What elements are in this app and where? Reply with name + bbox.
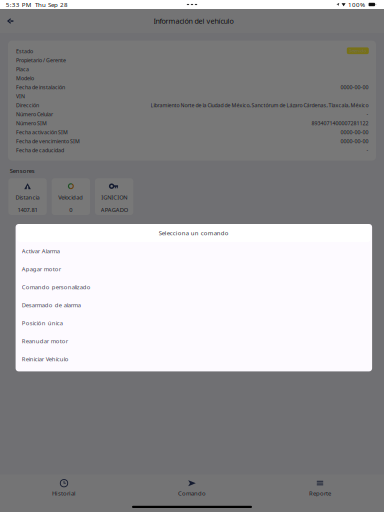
staticText: Reiniciar Vehículo bbox=[22, 355, 69, 363]
staticText: Fecha de caducidad bbox=[16, 146, 64, 154]
staticText: Reanudar motor bbox=[22, 337, 68, 345]
button[interactable]: Activar Alarma bbox=[16, 242, 372, 260]
button[interactable]: Reiniciar Vehículo bbox=[16, 350, 372, 368]
staticText: Detenido bbox=[349, 48, 367, 53]
staticText: Velocidad bbox=[58, 193, 83, 201]
staticText: Apagar motor bbox=[22, 265, 61, 273]
staticText: Dirección bbox=[16, 101, 39, 109]
staticText: Comando bbox=[178, 489, 206, 497]
button[interactable]: Reporte bbox=[256, 475, 384, 501]
button[interactable]: Reanudar motor bbox=[16, 332, 372, 350]
staticText: Número Celular bbox=[16, 110, 53, 118]
staticText: 8934071400007281122 bbox=[311, 119, 368, 127]
staticText: 1407.81 bbox=[18, 206, 38, 214]
staticText: Propietario / Gerente bbox=[16, 56, 66, 64]
staticText: Sensores bbox=[10, 167, 35, 175]
staticText: 5:33 PM bbox=[6, 0, 32, 9]
button[interactable]: Comando personalizado bbox=[16, 278, 372, 296]
staticText: Comando personalizado bbox=[22, 283, 91, 291]
staticText: 100% bbox=[348, 0, 365, 9]
staticText: Fecha activación SIM bbox=[16, 128, 68, 136]
staticText: 0000-00-00 bbox=[340, 137, 368, 145]
staticText: Fecha de vencimiento SIM bbox=[16, 137, 80, 145]
staticText: IGNICION bbox=[101, 193, 127, 201]
button[interactable]: Back bbox=[3, 11, 18, 31]
staticText: Historial bbox=[52, 489, 76, 497]
button[interactable]: Desarmado de alarma bbox=[16, 296, 372, 314]
staticText: Posición única bbox=[22, 319, 63, 327]
button[interactable]: Apagar motor bbox=[16, 260, 372, 278]
staticText: Libramiento Norte de la Ciudad de México… bbox=[150, 101, 368, 109]
staticText: Fecha de instalación bbox=[16, 83, 65, 91]
staticText: 0 bbox=[69, 206, 72, 214]
staticText: APAGADO bbox=[101, 206, 128, 214]
staticText: 0000-00-00 bbox=[340, 83, 368, 91]
staticText: Modelo bbox=[16, 74, 34, 82]
staticText: Estado bbox=[16, 47, 33, 55]
staticText: Información del vehículo bbox=[153, 16, 233, 26]
staticText: Distancia bbox=[16, 193, 40, 201]
staticText: Desarmado de alarma bbox=[22, 301, 81, 309]
button[interactable]: Comando bbox=[128, 475, 256, 501]
button[interactable]: Posición única bbox=[16, 314, 372, 332]
staticText: Número SIM bbox=[16, 119, 47, 127]
staticText: Thu Sep 28 bbox=[35, 0, 68, 9]
staticText: Activar Alarma bbox=[22, 247, 60, 255]
staticText: Reporte bbox=[309, 489, 331, 497]
staticText: - bbox=[366, 110, 368, 118]
staticText: VIN bbox=[16, 92, 25, 100]
staticText: Selecciona un comando bbox=[159, 229, 229, 237]
staticText: 0000-00-00 bbox=[340, 128, 368, 136]
staticText: Placa bbox=[16, 65, 29, 73]
staticText: - bbox=[366, 146, 368, 154]
button[interactable]: Historial bbox=[0, 475, 128, 501]
